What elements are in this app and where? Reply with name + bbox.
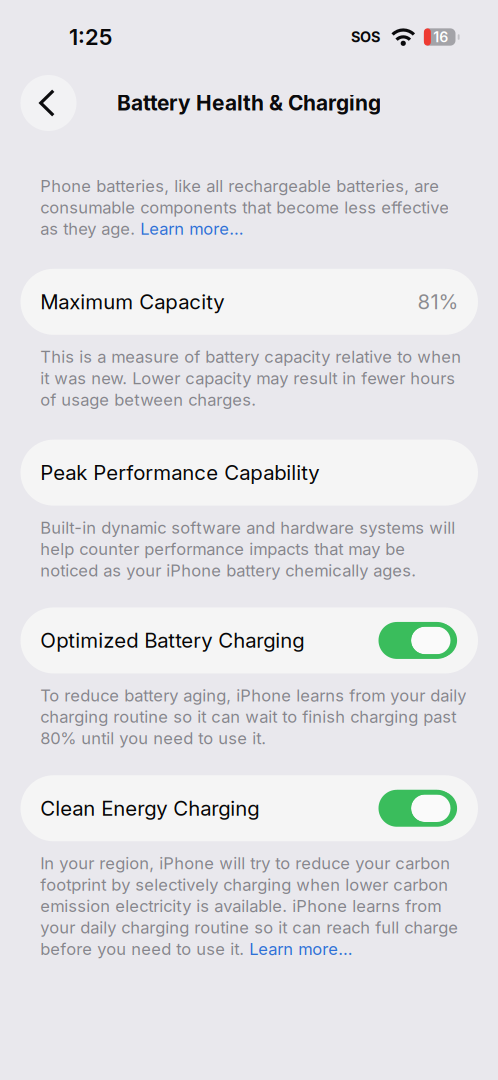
staticText: This is a measure of battery capacity re… xyxy=(40,347,461,410)
staticText: 81% xyxy=(417,289,458,314)
staticText: Phone batteries, like all rechargeable b… xyxy=(40,176,449,239)
staticText: Optimized Battery Charging xyxy=(40,628,304,653)
staticText: Maximum Capacity xyxy=(40,289,224,314)
button[interactable]: Peak Performance Capability xyxy=(20,440,478,506)
button[interactable]: Maximum Capacity xyxy=(20,269,478,335)
button[interactable]: Clean Energy Charging xyxy=(20,775,478,841)
staticText: SOS xyxy=(351,28,380,46)
button[interactable]: Back xyxy=(20,75,76,131)
staticText: Battery Health & Charging xyxy=(117,90,381,116)
staticText: Clean Energy Charging xyxy=(40,796,259,821)
staticText: 1:25 xyxy=(69,24,112,50)
staticText: In your region, iPhone will try to reduc… xyxy=(40,853,458,959)
staticText: Built-in dynamic software and hardware s… xyxy=(40,518,455,580)
staticText: Peak Performance Capability xyxy=(40,460,319,485)
staticText: To reduce battery aging, iPhone learns f… xyxy=(40,685,466,748)
button[interactable]: Optimized Battery Charging xyxy=(20,607,478,673)
staticText: 16 xyxy=(433,28,448,45)
